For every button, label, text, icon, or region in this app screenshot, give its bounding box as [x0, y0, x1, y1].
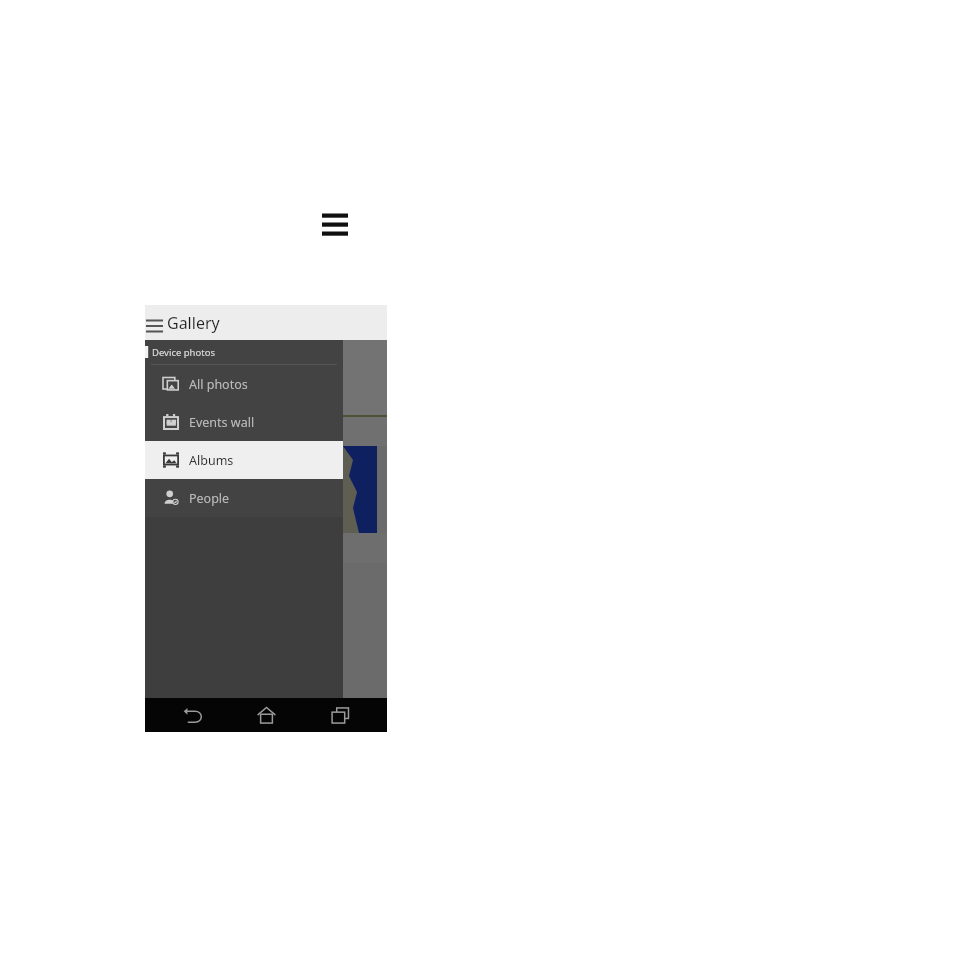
button[interactable]: All photos	[145, 365, 343, 403]
staticText: Device photos	[152, 346, 215, 359]
staticText: People	[189, 490, 230, 507]
staticText: All photos	[189, 376, 248, 393]
button[interactable]: Back	[165, 698, 219, 732]
button[interactable]: Home	[239, 698, 293, 732]
button[interactable]: Menu	[318, 208, 352, 242]
staticText: Events wall	[189, 414, 255, 431]
button[interactable]: Recent apps	[313, 698, 367, 732]
button[interactable]: Events wall	[145, 403, 343, 441]
staticText: Gallery	[167, 312, 220, 334]
button[interactable]: Open navigation drawer	[145, 305, 167, 340]
button[interactable]: People	[145, 479, 343, 517]
staticText: Albums	[189, 452, 234, 469]
button[interactable]: Albums	[145, 441, 343, 479]
